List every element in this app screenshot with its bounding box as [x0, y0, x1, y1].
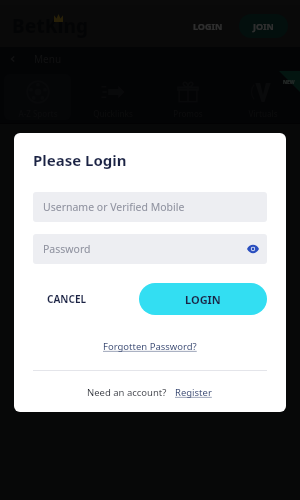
staticText: Username or Verified Mobile — [43, 200, 185, 214]
staticText: 60 — [260, 400, 273, 415]
button[interactable]: Virtuals — [229, 74, 296, 120]
button[interactable]: Futsal — [0, 390, 300, 424]
button[interactable]: CANCEL — [33, 283, 101, 315]
button[interactable]: JOIN — [239, 14, 288, 38]
staticText: Need an account? — [87, 386, 167, 399]
button[interactable]: Show password — [239, 235, 267, 263]
button[interactable]: Forgotten Password? — [97, 337, 203, 356]
staticText: Please Login — [33, 150, 127, 170]
staticText: LOGIN — [185, 292, 221, 307]
staticText: American Football — [58, 366, 152, 381]
staticText: CANCEL — [47, 292, 87, 306]
staticText: LOGIN — [193, 20, 223, 32]
staticText: Register — [175, 386, 212, 399]
button[interactable]: LOGIN — [187, 16, 229, 36]
button[interactable]: Username or Verified Mobile — [33, 192, 267, 222]
button[interactable]: Register — [173, 384, 214, 401]
button[interactable]: American Football — [0, 356, 300, 390]
staticText: 402 — [254, 366, 273, 381]
staticText: BetKing — [12, 13, 89, 39]
staticText: Futsal — [58, 400, 89, 415]
staticText: NEW — [283, 79, 295, 86]
staticText: Forgotten Password? — [103, 340, 197, 353]
other: Back — [8, 54, 18, 64]
staticText: Password — [43, 242, 91, 256]
button[interactable]: Password — [33, 234, 267, 264]
staticText: Menu — [34, 52, 62, 66]
button[interactable]: LOGIN — [139, 283, 267, 315]
staticText: JOIN — [253, 20, 274, 32]
